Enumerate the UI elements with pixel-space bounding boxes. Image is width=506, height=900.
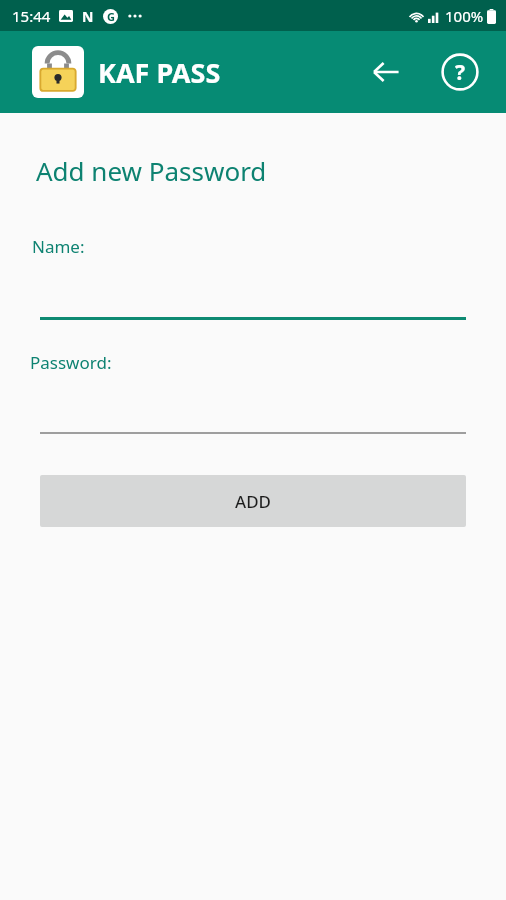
staticText: ?: [455, 58, 466, 87]
staticText: Name:: [32, 235, 85, 258]
staticText: 100%: [445, 6, 484, 26]
staticText: G: [107, 9, 115, 24]
button[interactable]: Help: [436, 48, 484, 96]
button[interactable]: [40, 418, 466, 434]
staticText: Password:: [30, 351, 112, 374]
button[interactable]: Back: [362, 48, 410, 96]
staticText: 15:44: [12, 6, 51, 26]
staticText: ADD: [235, 490, 271, 513]
button[interactable]: [40, 302, 466, 320]
staticText: N: [82, 7, 94, 26]
staticText: Add new Password: [36, 153, 267, 188]
button[interactable]: ADD: [40, 475, 466, 527]
staticText: KAF PASS: [98, 54, 221, 91]
